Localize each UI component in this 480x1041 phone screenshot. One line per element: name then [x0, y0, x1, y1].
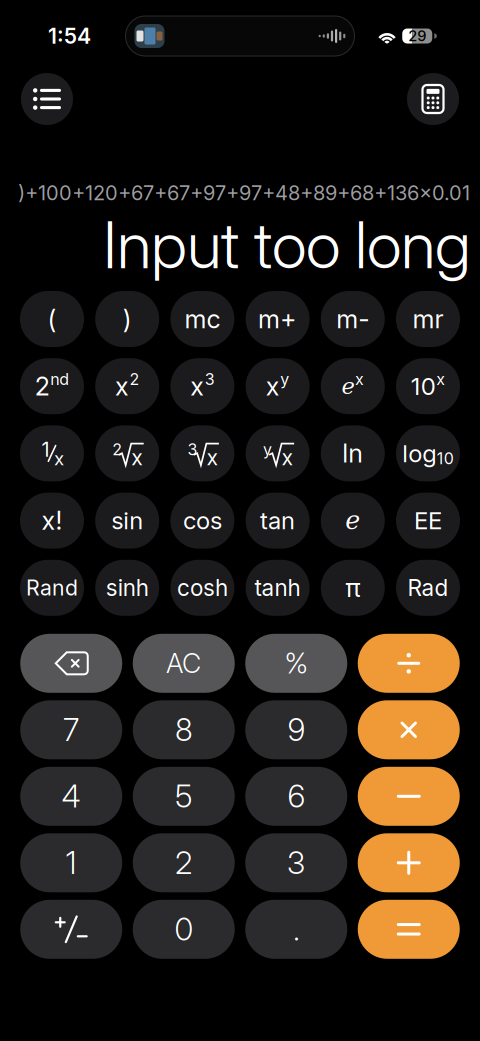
staticText: x [131, 444, 143, 470]
staticText: x [54, 447, 64, 470]
staticText: ln [342, 438, 363, 469]
staticText: 1:54 [48, 23, 91, 49]
staticText: x [436, 369, 445, 389]
button[interactable]: 9 [245, 700, 347, 759]
staticText: x! [41, 505, 62, 536]
button[interactable]: m+ [246, 291, 310, 347]
button[interactable]: 7 [20, 700, 122, 759]
button[interactable]: 1 [20, 425, 84, 481]
button[interactable]: 5 [133, 767, 235, 826]
button[interactable]: cosh [170, 560, 234, 616]
staticText: 5 [175, 778, 192, 815]
staticText: π [345, 572, 360, 603]
button[interactable]: e [321, 358, 385, 414]
staticText: x [355, 369, 364, 389]
button[interactable]: x [95, 358, 159, 414]
staticText: 1 [41, 437, 49, 461]
button[interactable]: sinh [95, 560, 159, 616]
button[interactable]: 2 [133, 833, 235, 892]
button[interactable]: ( [20, 291, 84, 347]
staticText: 4 [62, 778, 81, 815]
staticText: % [285, 646, 308, 680]
button[interactable]: x [95, 425, 159, 481]
button[interactable]: 2 [20, 358, 84, 414]
button[interactable]: x [170, 425, 234, 481]
button[interactable]: 1 [20, 833, 122, 892]
staticText: x [206, 444, 218, 470]
staticText: 2 [112, 440, 122, 459]
staticText: tan [260, 506, 295, 535]
staticText: 2 [129, 369, 139, 389]
staticText: x [282, 444, 294, 470]
button[interactable]: Divide [358, 634, 460, 693]
button[interactable]: ln [321, 425, 385, 481]
button[interactable]: mr [396, 291, 460, 347]
button[interactable]: Rad [396, 560, 460, 616]
staticText: cos [183, 506, 222, 535]
staticText: AC [166, 647, 201, 679]
staticText: ( [47, 304, 56, 334]
button[interactable]: 8 [133, 700, 235, 759]
staticText: m+ [258, 304, 297, 334]
button[interactable]: Rand [20, 560, 84, 616]
staticText: log [402, 439, 436, 468]
button[interactable]: sin [95, 493, 159, 549]
button[interactable]: m- [321, 291, 385, 347]
button[interactable]: Equals [358, 900, 460, 959]
staticText: 6 [288, 778, 305, 815]
button[interactable]: Multiply [358, 700, 460, 759]
staticText: sinh [106, 574, 149, 601]
button[interactable]: % [245, 634, 347, 693]
staticText: y [263, 440, 272, 459]
staticText: Rad [407, 574, 448, 601]
staticText: ) [123, 304, 132, 334]
button[interactable]: . [245, 900, 347, 959]
staticText: cosh [177, 574, 228, 601]
staticText: 2 [35, 371, 50, 402]
staticText: 3 [205, 369, 215, 389]
button[interactable]: 0 [133, 900, 235, 959]
button[interactable]: log [396, 425, 460, 481]
button[interactable]: ) [95, 291, 159, 347]
staticText: 3 [287, 844, 305, 881]
staticText: mc [184, 304, 220, 334]
staticText: 7 [63, 711, 79, 748]
staticText: 0 [175, 911, 193, 948]
button[interactable]: x [246, 425, 310, 481]
staticText: e [342, 373, 355, 399]
staticText: 29 [408, 27, 426, 45]
button[interactable]: x [246, 358, 310, 414]
button[interactable]: Calculator keypad [407, 73, 459, 125]
staticText: 3 [187, 440, 197, 459]
button[interactable]: cos [170, 493, 234, 549]
staticText: Input too long [103, 206, 471, 284]
button[interactable]: e [321, 493, 385, 549]
staticText: Rand [26, 575, 78, 601]
button[interactable]: Minus [358, 767, 460, 826]
button[interactable]: Plus [358, 833, 460, 892]
staticText: x [266, 371, 280, 402]
button[interactable]: AC [133, 634, 235, 693]
staticText: x [190, 371, 204, 402]
button[interactable]: π [321, 560, 385, 616]
button[interactable]: Delete [20, 634, 122, 693]
button[interactable]: x! [20, 493, 84, 549]
button[interactable]: History [21, 73, 73, 125]
button[interactable]: mc [170, 291, 234, 347]
staticText: sin [111, 506, 143, 535]
staticText: tanh [255, 574, 301, 601]
button[interactable]: 10 [396, 358, 460, 414]
button[interactable]: Toggle sign [20, 900, 122, 959]
staticText: x [115, 371, 129, 402]
staticText: 10 [411, 372, 436, 401]
button[interactable]: 6 [245, 767, 347, 826]
button[interactable]: tanh [246, 560, 310, 616]
button[interactable]: x [170, 358, 234, 414]
staticText: EE [414, 506, 442, 535]
button[interactable]: 4 [20, 767, 122, 826]
button[interactable]: 3 [245, 833, 347, 892]
button[interactable]: EE [396, 493, 460, 549]
button[interactable]: tan [246, 493, 310, 549]
staticText: nd [50, 369, 69, 389]
staticText: )+100+120+67+67+97+97+48+89+68+136×0.01 [18, 181, 470, 205]
